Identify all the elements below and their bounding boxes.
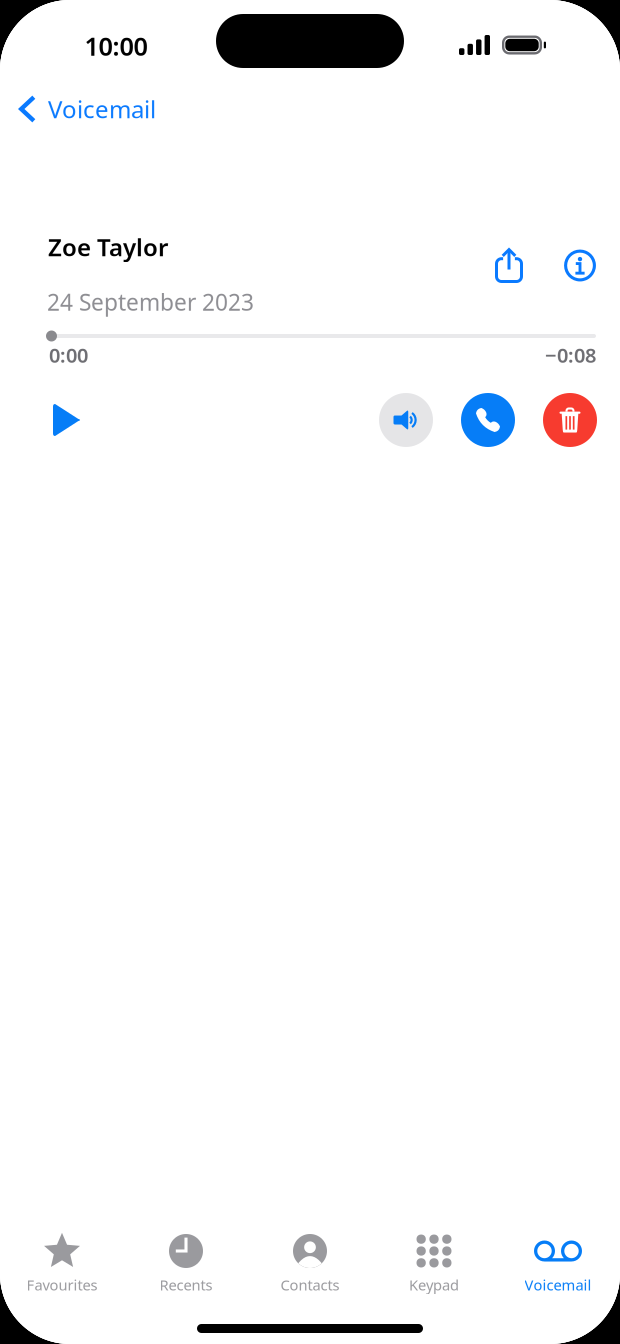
staticText: 24 September 2023 [47,287,254,317]
staticText: 0:00 [49,342,88,368]
button[interactable]: Details [552,238,608,292]
staticText: Zoe Taylor [48,231,168,263]
button[interactable]: Voicemail [0,84,168,134]
button[interactable]: Play [41,393,94,447]
staticText: Voicemail [48,93,156,125]
button[interactable]: Favourites [0,1223,124,1309]
button[interactable]: Recents [124,1223,248,1309]
button[interactable]: Speaker [379,393,433,447]
staticText: Favourites [26,1275,97,1294]
button[interactable]: Call Back [461,393,515,447]
staticText: Voicemail [524,1275,591,1294]
button[interactable]: Share [481,239,537,292]
staticText: Recents [159,1275,212,1294]
staticText: Keypad [409,1275,459,1294]
button[interactable]: Contacts [248,1223,372,1309]
button[interactable]: Delete [543,393,597,447]
button[interactable]: Voicemail [496,1223,620,1309]
staticText: Contacts [280,1275,339,1294]
button[interactable]: Keypad [372,1223,496,1309]
staticText: 10:00 [84,29,147,63]
staticText: −0:08 [545,342,596,368]
